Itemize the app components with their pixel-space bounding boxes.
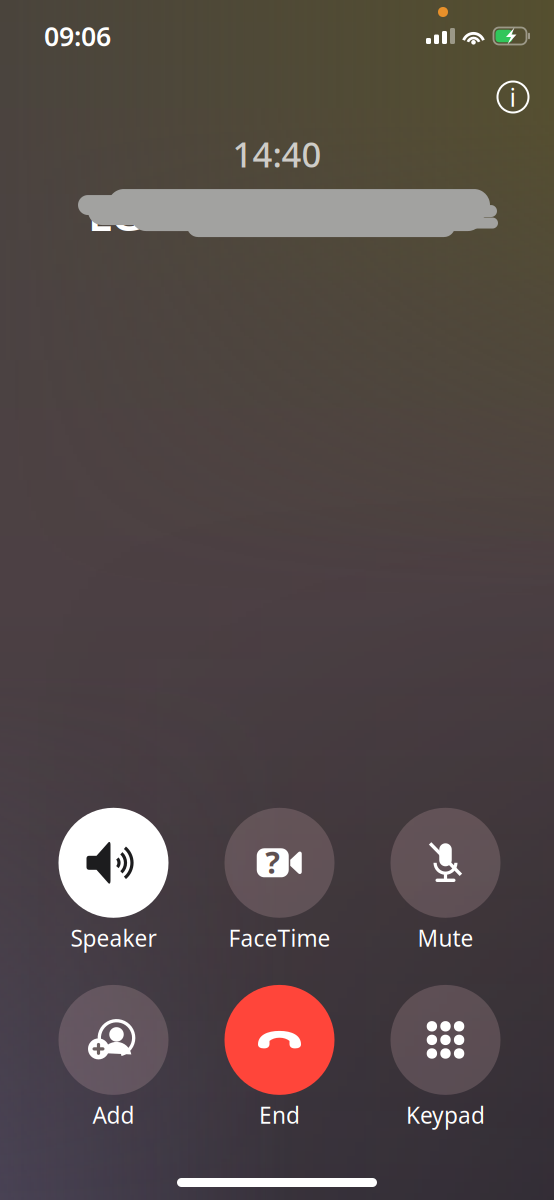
button[interactable]: Call info — [491, 75, 535, 119]
staticText: LGT S — [88, 185, 203, 243]
button[interactable]: Mute — [370, 808, 520, 953]
staticText: End — [259, 1100, 300, 1130]
staticText: 14:40 — [232, 131, 321, 177]
staticText: i — [509, 80, 516, 114]
button[interactable]: Keypad — [370, 985, 520, 1130]
staticText: FaceTime — [228, 923, 330, 953]
staticText: Keypad — [406, 1100, 485, 1130]
staticText: Add — [92, 1100, 134, 1130]
staticText: 09:06 — [44, 18, 111, 54]
staticText: Speaker — [70, 923, 156, 953]
staticText: Mute — [417, 923, 473, 953]
button[interactable]: Add — [38, 985, 188, 1130]
staticText: ? — [265, 841, 280, 882]
button[interactable]: End — [204, 985, 354, 1130]
button[interactable]: Speaker — [38, 808, 188, 953]
button[interactable]: ? — [204, 808, 354, 953]
